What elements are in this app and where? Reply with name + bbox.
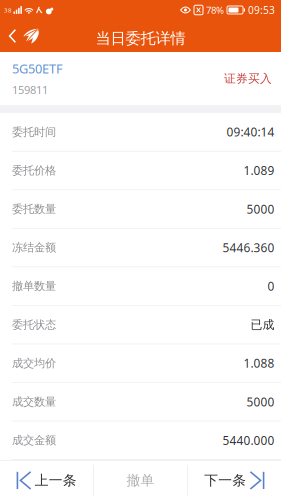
staticText: 5446.360	[222, 239, 274, 256]
button[interactable]: 上一条	[0, 461, 93, 500]
staticText: 证券买入	[224, 71, 272, 86]
staticText: 159811	[12, 82, 48, 97]
staticText: 下一条	[204, 472, 246, 489]
staticText: 5G50ETF	[12, 60, 63, 77]
staticText: 已成	[250, 317, 274, 332]
staticText: 5000	[246, 394, 274, 410]
staticText: 撤单	[126, 472, 154, 489]
staticText: 上一条	[35, 472, 77, 489]
staticText: 09:53	[248, 3, 275, 17]
staticText: 委托状态	[12, 318, 56, 332]
staticText: 5000	[246, 201, 274, 217]
staticText: 委托数量	[12, 202, 56, 216]
button[interactable]: 下一条	[188, 461, 281, 500]
staticText: 成交金额	[12, 433, 56, 447]
staticText: 成交均价	[12, 356, 56, 370]
staticText: 09:40:14	[226, 124, 274, 140]
staticText: 5440.000	[222, 432, 274, 448]
button[interactable]: 撤单	[94, 461, 187, 500]
staticText: 1.089	[243, 162, 274, 179]
button[interactable]: Back	[0, 20, 47, 52]
staticText: 成交数量	[12, 395, 56, 409]
staticText: 当日委托详情	[95, 29, 185, 48]
staticText: 1.088	[243, 355, 274, 371]
staticText: 78%	[206, 3, 224, 17]
staticText: 委托价格	[12, 163, 56, 177]
staticText: 38	[4, 6, 12, 14]
staticText: 委托时间	[12, 125, 56, 139]
staticText: 撤单数量	[12, 279, 56, 293]
staticText: 0	[267, 278, 274, 294]
staticText: 冻结金额	[12, 240, 56, 255]
